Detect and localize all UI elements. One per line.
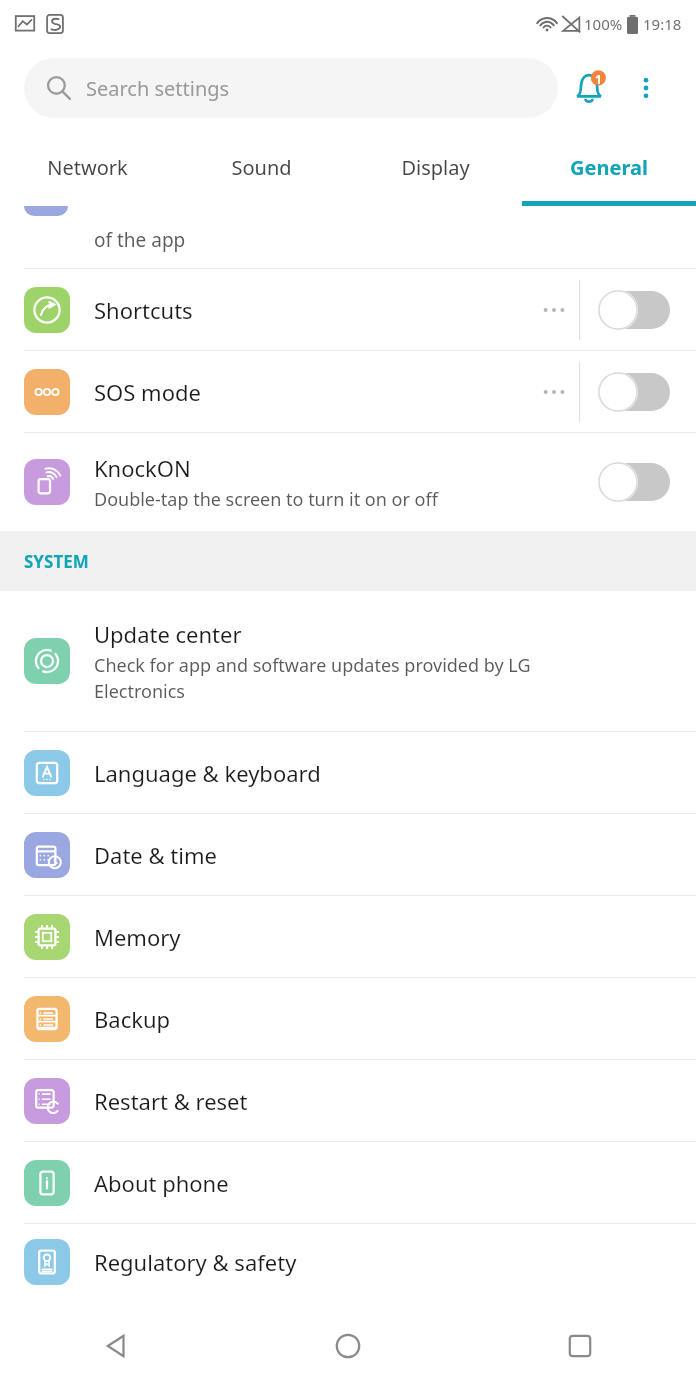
- staticText: About phone: [94, 1168, 229, 1198]
- staticText: Display: [401, 154, 470, 181]
- staticText: Double-tap the screen to turn it on or o…: [94, 487, 438, 512]
- button[interactable]: SOS mode toggle: [598, 371, 670, 413]
- button[interactable]: SOS mode: [0, 351, 696, 432]
- staticText: Network: [47, 154, 128, 181]
- staticText: SOS mode: [94, 377, 201, 407]
- staticText: Backup: [94, 1004, 171, 1034]
- button[interactable]: Network: [0, 128, 174, 206]
- button[interactable]: Regulatory & safety: [0, 1224, 696, 1300]
- button[interactable]: Home: [232, 1300, 464, 1392]
- button[interactable]: Memory: [0, 896, 696, 977]
- staticText: 100%: [584, 14, 623, 34]
- staticText: Date & time: [94, 840, 217, 870]
- staticText: Regulatory & safety: [94, 1247, 297, 1277]
- button[interactable]: Shortcuts toggle: [598, 289, 670, 331]
- button[interactable]: More options: [620, 62, 672, 114]
- button[interactable]: Update center: [0, 591, 696, 731]
- staticText: Shortcuts: [94, 295, 193, 325]
- staticText: Search settings: [86, 75, 230, 102]
- staticText: KnockON: [94, 453, 191, 483]
- button[interactable]: Restart & reset: [0, 1060, 696, 1141]
- staticText: Memory: [94, 922, 181, 952]
- staticText: Sound: [231, 154, 292, 181]
- button[interactable]: Display: [348, 128, 522, 206]
- button[interactable]: Shortcuts: [0, 269, 696, 350]
- button[interactable]: Sound: [174, 128, 348, 206]
- staticText: of the app: [94, 227, 186, 253]
- staticText: Update center: [94, 619, 242, 649]
- button[interactable]: Notifications: [558, 57, 620, 119]
- button[interactable]: Language & keyboard: [0, 732, 696, 813]
- button[interactable]: Backup: [0, 978, 696, 1059]
- staticText: Language & keyboard: [94, 758, 321, 788]
- staticText: Restart & reset: [94, 1086, 248, 1116]
- button[interactable]: KnockON toggle: [598, 461, 670, 503]
- button[interactable]: Recents: [464, 1300, 696, 1392]
- staticText: General: [570, 154, 648, 181]
- button[interactable]: KnockON: [0, 433, 696, 531]
- staticText: SYSTEM: [24, 550, 89, 573]
- button[interactable]: Back: [0, 1300, 232, 1392]
- button[interactable]: About phone: [0, 1142, 696, 1223]
- button[interactable]: General: [522, 128, 696, 206]
- staticText: Check for app and software updates provi…: [94, 653, 531, 704]
- staticText: 19:18: [643, 14, 682, 34]
- button[interactable]: Search settings: [24, 58, 558, 118]
- button[interactable]: Date & time: [0, 814, 696, 895]
- staticText: 1: [595, 71, 602, 87]
